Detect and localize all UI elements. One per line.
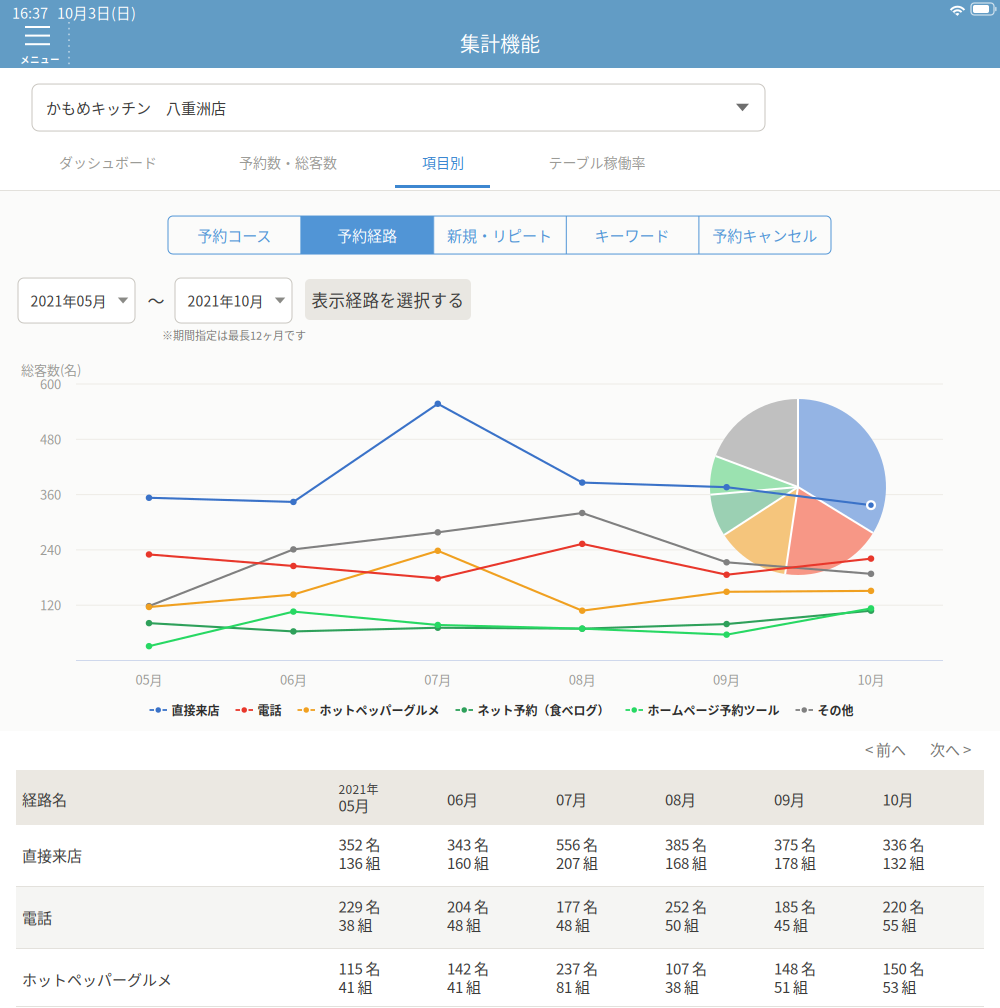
staticText: 55 組 [882,913,916,935]
staticText: 177 名 [556,895,598,917]
staticText: 06月 [447,788,478,810]
staticText: 16:37 10月3日(日) [12,2,136,23]
button[interactable]: 予約数・総客数 [203,138,373,186]
button[interactable]: 項目別 [358,138,528,186]
button[interactable]: ダッシュボード [23,138,193,186]
staticText: 08月 [569,670,596,688]
staticText: 375 名 [774,833,816,855]
button[interactable]: 予約経路 [301,216,433,254]
staticText: 115 名 [338,957,380,979]
staticText: 360 [40,485,61,503]
staticText: かもめキッチン 八重洲店 [46,97,226,118]
button[interactable]: メニュー [25,26,71,68]
button[interactable]: かもめキッチン 八重洲店 [32,84,765,131]
staticText: その他 [817,701,853,719]
staticText: 51 組 [774,975,808,997]
button[interactable]: 次へ > [930,737,1000,761]
button[interactable]: 予約キャンセル [698,216,831,254]
staticText: 09月 [774,788,805,810]
staticText: 直接来店 [171,701,219,719]
staticText: 142 名 [447,957,489,979]
staticText: 336 名 [882,833,924,855]
button[interactable]: テーブル稼働率 [512,138,682,186]
staticText: 50 組 [665,913,699,935]
button[interactable]: < 前へ [865,737,935,761]
staticText: 220 名 [882,895,924,917]
staticText: 48 組 [447,913,481,935]
staticText: 10月 [857,670,884,688]
staticText: 148 名 [774,957,816,979]
staticText: 120 [40,595,61,614]
staticText: 表示経路を選択する [311,288,464,311]
staticText: 直接来店 [22,844,82,866]
staticText: 次へ > [930,738,971,760]
button[interactable]: 表示経路を選択する [305,279,471,320]
staticText: 38 組 [665,975,699,997]
staticText: メニュー [20,52,60,66]
staticText: < 前へ [865,738,906,760]
staticText: テーブル稼働率 [548,152,645,172]
staticText: 新規・リピート [447,224,552,246]
button[interactable]: 予約コース [168,216,301,254]
staticText: 〜 [147,288,164,312]
staticText: 06月 [280,670,307,688]
button[interactable]: 2021年05月 [18,278,135,323]
staticText: 05月 [135,670,162,688]
staticText: 41 組 [338,975,372,997]
staticText: 132 組 [882,851,924,873]
staticText: 07月 [424,670,451,688]
staticText: 107 名 [665,957,707,979]
staticText: キーワード [595,224,670,246]
staticText: 480 [40,429,61,448]
staticText: 204 名 [447,895,489,917]
staticText: 178 組 [774,851,816,873]
staticText: 81 組 [556,975,590,997]
staticText: ダッシュボード [59,152,157,172]
staticText: 項目別 [422,152,464,172]
staticText: ホットペッパーグルメ [22,968,172,990]
staticText: 48 組 [556,913,590,935]
button[interactable]: 2021年10月 [175,278,292,323]
staticText: 2021年10月 [188,290,264,311]
staticText: 252 名 [665,895,707,917]
button[interactable]: キーワード [566,216,698,254]
staticText: ネット予約（食べログ） [477,701,609,719]
staticText: ホームページ予約ツール [647,701,779,719]
staticText: 08月 [665,788,696,810]
staticText: 予約コース [197,224,271,246]
staticText: 240 [40,540,61,559]
staticText: 2021年05月 [31,290,107,311]
staticText: 185 名 [774,895,816,917]
staticText: 53 組 [882,975,916,997]
staticText: ※期間指定は最長12ヶ月です [162,327,306,343]
staticText: 2021年 [338,780,378,797]
staticText: 電話 [22,906,52,928]
staticText: 207 組 [556,851,598,873]
staticText: 229 名 [338,895,380,917]
staticText: 予約数・総客数 [239,152,337,172]
staticText: 160 組 [447,851,489,873]
staticText: 経路名 [22,788,67,810]
staticText: ホットペッパーグルメ [319,701,439,719]
staticText: 352 名 [338,833,380,855]
staticText: 168 組 [665,851,707,873]
staticText: 予約経路 [337,224,397,246]
staticText: 150 名 [882,957,924,979]
staticText: 09月 [713,670,740,688]
staticText: 136 組 [338,851,380,873]
staticText: 385 名 [665,833,707,855]
staticText: 600 [40,374,61,393]
staticText: 10月 [882,788,913,810]
staticText: 38 組 [338,913,372,935]
staticText: 集計機能 [460,28,540,57]
staticText: 45 組 [774,913,808,935]
staticText: 556 名 [556,833,598,855]
staticText: 総客数(名) [21,360,81,379]
staticText: 343 名 [447,833,489,855]
button[interactable]: 新規・リピート [433,216,566,254]
staticText: 予約キャンセル [712,224,817,246]
staticText: 電話 [257,701,281,719]
staticText: 07月 [556,788,587,810]
staticText: 05月 [338,794,369,816]
staticText: 237 名 [556,957,598,979]
